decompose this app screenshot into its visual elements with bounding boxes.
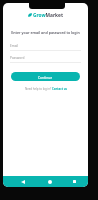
button[interactable]: Recents bbox=[70, 177, 79, 186]
button[interactable]: Password bbox=[10, 56, 81, 63]
staticText: Continue bbox=[38, 75, 53, 79]
staticText: Email bbox=[10, 44, 19, 48]
button[interactable]: Home bbox=[45, 177, 54, 186]
button[interactable]: GrowMarket bbox=[3, 11, 88, 19]
staticText: Password bbox=[10, 56, 25, 60]
button[interactable]: Contact us bbox=[52, 87, 67, 91]
button[interactable]: Email bbox=[10, 44, 81, 51]
staticText: GrowMarket bbox=[33, 12, 63, 19]
staticText: Need help to log in? bbox=[25, 87, 52, 91]
button[interactable]: Back bbox=[18, 177, 27, 186]
staticText: Enter your email and password to login bbox=[3, 30, 88, 35]
button[interactable]: Continue bbox=[11, 72, 80, 81]
